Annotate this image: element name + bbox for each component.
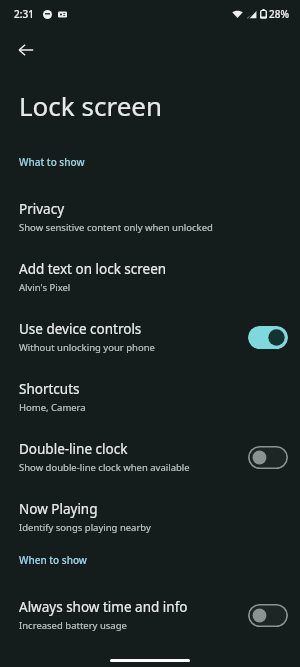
staticText: Alvin's Pixel bbox=[19, 281, 71, 294]
staticText: When to show bbox=[19, 553, 87, 567]
staticText: 28% bbox=[269, 7, 289, 21]
button[interactable]: Now Playing bbox=[0, 487, 300, 547]
button[interactable]: Add text on lock screen bbox=[0, 247, 300, 307]
staticText: Privacy bbox=[19, 200, 65, 218]
staticText: Use device controls bbox=[19, 320, 142, 338]
staticText: 2:31 bbox=[14, 7, 34, 21]
staticText: Always show time and info bbox=[19, 598, 188, 616]
staticText: Without unlocking your phone bbox=[19, 341, 155, 354]
button[interactable]: Toggle on bbox=[248, 326, 288, 349]
staticText: Home, Camera bbox=[19, 401, 86, 414]
staticText: Increased battery usage bbox=[19, 619, 127, 632]
button[interactable]: Toggle off bbox=[248, 604, 288, 627]
button[interactable]: Back bbox=[10, 34, 42, 66]
button[interactable]: Always show time and info bbox=[0, 585, 300, 645]
staticText: Show sensitive content only when unlocke… bbox=[19, 221, 213, 234]
staticText: Double-line clock bbox=[19, 440, 128, 458]
staticText: Shortcuts bbox=[19, 380, 80, 398]
staticText: Identify songs playing nearby bbox=[19, 521, 151, 534]
button[interactable]: Double-line clock bbox=[0, 427, 300, 487]
staticText: Add text on lock screen bbox=[19, 260, 167, 278]
staticText: Now Playing bbox=[19, 500, 98, 518]
staticText: What to show bbox=[19, 155, 85, 169]
button[interactable]: Toggle off bbox=[248, 446, 288, 469]
button[interactable]: Shortcuts bbox=[0, 367, 300, 427]
staticText: Lock screen bbox=[19, 88, 163, 123]
staticText: Show double-line clock when available bbox=[19, 461, 190, 474]
button[interactable]: Use device controls bbox=[0, 307, 300, 367]
button[interactable]: Privacy bbox=[0, 187, 300, 247]
